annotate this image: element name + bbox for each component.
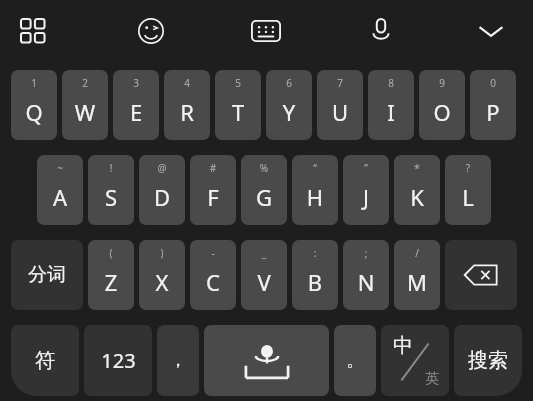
button[interactable]: # — [190, 155, 236, 225]
button[interactable]: Keyboard layout — [243, 8, 289, 54]
staticText: ; — [343, 246, 389, 260]
staticText: L — [445, 182, 491, 212]
button[interactable]: Toolbox — [10, 8, 56, 54]
button[interactable]: ~ — [37, 155, 83, 225]
button[interactable]: * — [394, 155, 440, 225]
button[interactable]: ” — [343, 155, 389, 225]
button[interactable]: 1 — [11, 70, 57, 140]
staticText: 7 — [317, 76, 363, 90]
button[interactable]: : — [292, 240, 338, 310]
staticText: ) — [139, 246, 185, 260]
button[interactable]: 4 — [164, 70, 210, 140]
button[interactable]: Backspace — [445, 240, 517, 310]
staticText: 9 — [419, 76, 465, 90]
staticText: C — [190, 267, 236, 297]
staticText: 0 — [470, 76, 516, 90]
staticText: J — [343, 182, 389, 212]
button[interactable]: 符 — [11, 325, 79, 396]
staticText: Z — [88, 267, 134, 297]
button[interactable]: ) — [139, 240, 185, 310]
button[interactable]: @ — [139, 155, 185, 225]
staticText: ， — [169, 349, 187, 372]
staticText: K — [394, 182, 440, 212]
staticText: * — [394, 161, 440, 175]
staticText: P — [470, 97, 516, 127]
staticText: X — [139, 267, 185, 297]
staticText: ? — [445, 161, 491, 175]
staticText: H — [292, 182, 338, 212]
staticText: “ — [292, 161, 338, 175]
button[interactable]: Emoji — [128, 8, 174, 54]
button[interactable]: Voice input — [358, 8, 404, 54]
button[interactable]: 123 — [84, 325, 152, 396]
button[interactable]: 中 — [381, 325, 449, 396]
staticText: N — [343, 267, 389, 297]
staticText: 8 — [368, 76, 414, 90]
staticText: 中 — [393, 333, 413, 358]
staticText: : — [292, 246, 338, 260]
staticText: W — [62, 97, 108, 127]
staticText: ! — [88, 161, 134, 175]
button[interactable]: “ — [292, 155, 338, 225]
staticText: U — [317, 97, 363, 127]
staticText: _ — [241, 246, 287, 260]
staticText: ” — [343, 161, 389, 175]
staticText: D — [139, 182, 185, 212]
button[interactable]: 分词 — [11, 240, 83, 310]
staticText: - — [190, 246, 236, 260]
staticText: 。 — [346, 349, 364, 372]
button[interactable]: 8 — [368, 70, 414, 140]
button[interactable]: % — [241, 155, 287, 225]
staticText: Q — [11, 97, 57, 127]
staticText: F — [190, 182, 236, 212]
staticText: B — [292, 267, 338, 297]
button[interactable]: 。 — [334, 325, 376, 396]
button[interactable]: 7 — [317, 70, 363, 140]
button[interactable]: ? — [445, 155, 491, 225]
button[interactable]: - — [190, 240, 236, 310]
button[interactable]: 3 — [113, 70, 159, 140]
staticText: ( — [88, 246, 134, 260]
staticText: T — [215, 97, 261, 127]
button[interactable]: _ — [241, 240, 287, 310]
staticText: V — [241, 267, 287, 297]
button[interactable]: ， — [157, 325, 199, 396]
button[interactable]: 6 — [266, 70, 312, 140]
staticText: # — [190, 161, 236, 175]
staticText: Y — [266, 97, 312, 127]
staticText: O — [419, 97, 465, 127]
button[interactable]: 2 — [62, 70, 108, 140]
staticText: E — [113, 97, 159, 127]
button[interactable]: Space — [204, 325, 329, 396]
button[interactable]: ; — [343, 240, 389, 310]
staticText: 6 — [266, 76, 312, 90]
staticText: 分词 — [28, 263, 66, 287]
button[interactable]: / — [394, 240, 440, 310]
button[interactable]: Hide keyboard — [468, 8, 514, 54]
staticText: 3 — [113, 76, 159, 90]
staticText: A — [37, 182, 83, 212]
button[interactable]: 0 — [470, 70, 516, 140]
staticText: / — [394, 246, 440, 260]
staticText: @ — [139, 161, 185, 175]
button[interactable]: ( — [88, 240, 134, 310]
staticText: G — [241, 182, 287, 212]
button[interactable]: 搜索 — [454, 325, 522, 396]
button[interactable]: 9 — [419, 70, 465, 140]
staticText: % — [241, 161, 287, 175]
button[interactable]: ! — [88, 155, 134, 225]
staticText: 1 — [11, 76, 57, 90]
staticText: 搜索 — [468, 348, 508, 373]
staticText: ~ — [37, 161, 83, 175]
staticText: 4 — [164, 76, 210, 90]
staticText: I — [368, 97, 414, 127]
staticText: 英 — [425, 370, 439, 388]
staticText: 2 — [62, 76, 108, 90]
staticText: S — [88, 182, 134, 212]
button[interactable]: 5 — [215, 70, 261, 140]
staticText: M — [394, 267, 440, 297]
staticText: 符 — [35, 348, 55, 373]
staticText: 5 — [215, 76, 261, 90]
staticText: R — [164, 97, 210, 127]
staticText: 123 — [101, 347, 136, 374]
